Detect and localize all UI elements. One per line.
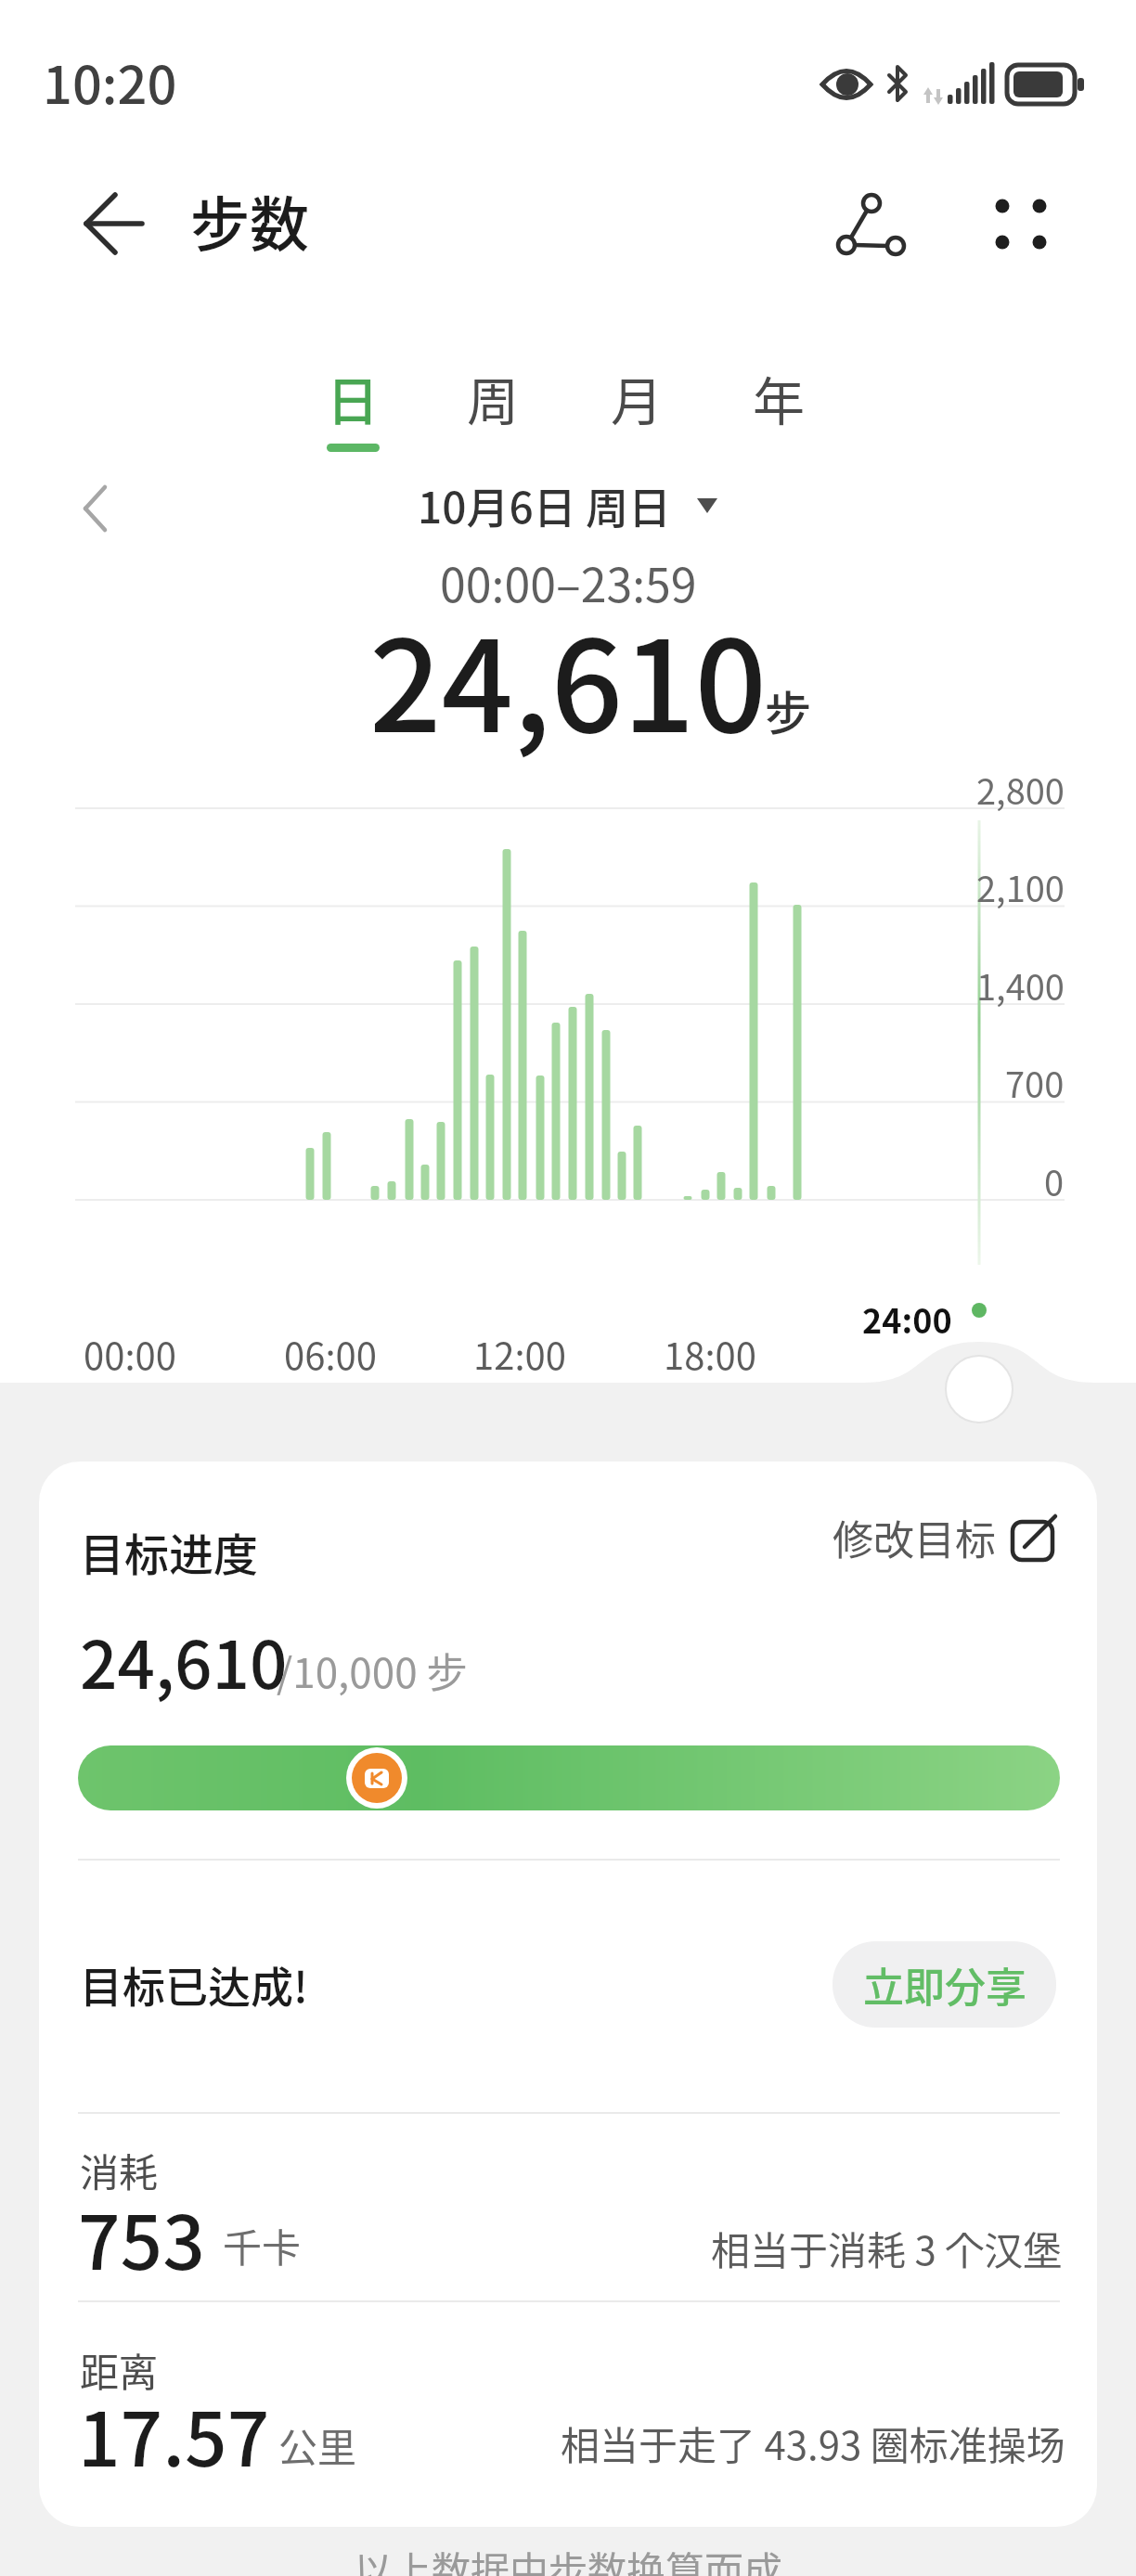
- staticText: 24,610: [80, 1613, 288, 1708]
- staticText: 1,400: [976, 960, 1065, 1011]
- staticText: 相当于消耗 3 个汉堡: [711, 2220, 1063, 2276]
- staticText: 目标已达成!: [80, 1953, 308, 2016]
- staticText: 步: [765, 676, 811, 743]
- staticText: 06:00: [284, 1327, 377, 1381]
- button[interactable]: 周: [437, 360, 549, 455]
- staticText: 月: [611, 360, 663, 435]
- button[interactable]: 月: [581, 360, 692, 455]
- staticText: 0: [1044, 1155, 1065, 1206]
- button[interactable]: 10月6日 周日: [0, 474, 1136, 536]
- staticText: 年: [753, 360, 805, 435]
- staticText: 700: [1005, 1057, 1065, 1108]
- staticText: 17.57: [78, 2380, 270, 2488]
- staticText: 立即分享: [863, 1955, 1026, 2015]
- staticText: 相当于走了 43.93 圈标准操场: [561, 2415, 1065, 2471]
- button[interactable]: [56, 167, 167, 278]
- staticText: 753: [78, 2183, 205, 2291]
- staticText: 10月6日 周日: [418, 474, 672, 536]
- staticText: 00:00–23:59: [440, 548, 697, 615]
- staticText: 修改目标: [833, 1508, 996, 1567]
- staticText: 00:00: [84, 1327, 176, 1381]
- button[interactable]: 立即分享: [833, 1941, 1056, 2028]
- staticText: 千卡: [223, 2217, 302, 2273]
- staticText: 目标进度: [80, 1519, 259, 1584]
- staticText: 2,800: [976, 764, 1065, 815]
- staticText: 24,610: [369, 586, 768, 768]
- staticText: 12:00: [473, 1327, 566, 1381]
- button[interactable]: 日: [297, 360, 408, 455]
- staticText: 日: [327, 360, 379, 435]
- staticText: 24:00: [862, 1294, 952, 1343]
- staticText: /10,000 步: [277, 1641, 468, 1700]
- staticText: 步数: [190, 177, 309, 264]
- button[interactable]: [56, 473, 130, 557]
- staticText: 距离: [80, 2341, 159, 2398]
- staticText: 以上数据中步数换算而成: [354, 2540, 783, 2576]
- staticText: 18:00: [664, 1327, 756, 1381]
- staticText: 2,100: [976, 861, 1065, 912]
- staticText: 10:20: [43, 44, 177, 119]
- staticText: 公里: [278, 2416, 357, 2473]
- staticText: 消耗: [80, 2142, 159, 2198]
- button[interactable]: 年: [723, 360, 834, 455]
- button[interactable]: [975, 176, 1067, 269]
- staticText: 周: [467, 360, 519, 435]
- button[interactable]: [817, 176, 919, 278]
- button[interactable]: 修改目标: [833, 1508, 1056, 1567]
